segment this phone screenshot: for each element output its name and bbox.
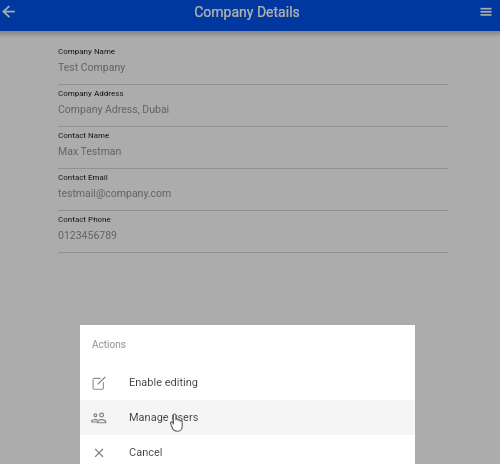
staticText: Company Name bbox=[58, 47, 116, 56]
staticText: Test Company bbox=[58, 61, 126, 73]
staticText: testmail@company.com bbox=[58, 187, 172, 199]
staticText: Max Testman bbox=[58, 145, 122, 157]
staticText: Contact Name bbox=[58, 131, 110, 140]
staticText: Actions bbox=[92, 339, 126, 351]
staticText: Manage users bbox=[129, 411, 199, 424]
button[interactable]: Cancel bbox=[80, 435, 415, 464]
staticText: Company Adress, Dubai bbox=[58, 103, 170, 115]
button[interactable]: Manage users bbox=[80, 400, 415, 435]
staticText: Enable editing bbox=[129, 376, 198, 389]
staticText: Company Details bbox=[194, 4, 300, 20]
staticText: 0123456789 bbox=[58, 229, 118, 241]
staticText: Company Address bbox=[58, 89, 124, 98]
button[interactable]: Back bbox=[0, 0, 21, 24]
staticText: Cancel bbox=[129, 446, 163, 459]
staticText: Contact Email bbox=[58, 173, 108, 182]
button[interactable]: Enable editing bbox=[80, 365, 415, 400]
staticText: Contact Phone bbox=[58, 215, 111, 224]
button[interactable]: Menu bbox=[474, 0, 498, 24]
